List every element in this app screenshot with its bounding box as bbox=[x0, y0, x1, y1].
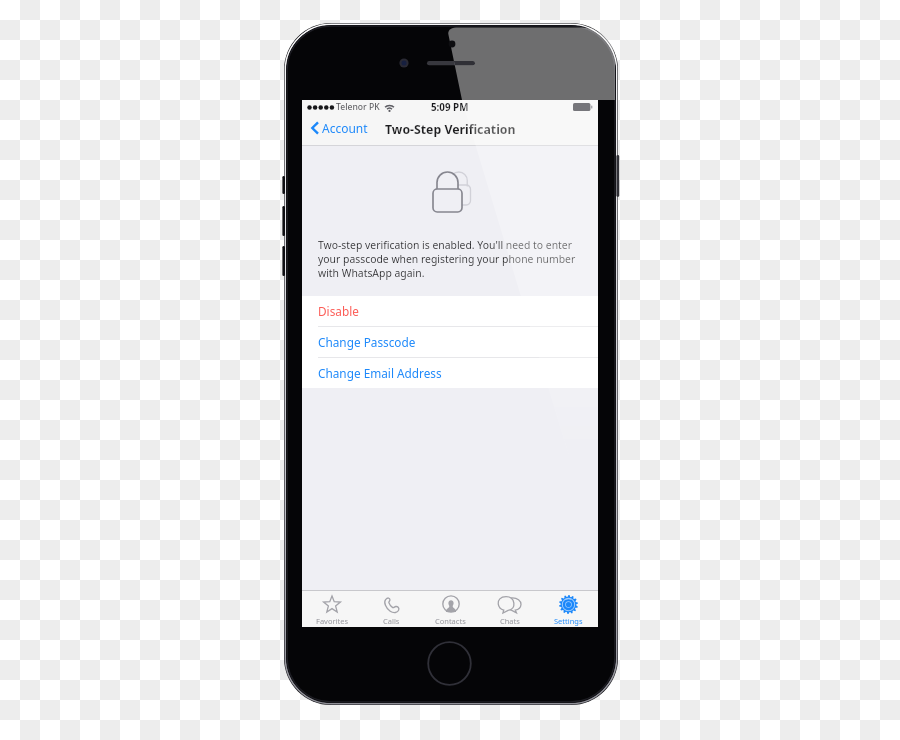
staticText: Disable bbox=[318, 303, 359, 319]
staticText: Calls bbox=[383, 616, 400, 626]
button[interactable]: Calls bbox=[362, 591, 421, 627]
staticText: Two-Step Verification bbox=[385, 121, 516, 138]
staticText: 5:09 PM bbox=[431, 101, 469, 114]
staticText: Change Passcode bbox=[318, 334, 416, 350]
staticText: Change Email Address bbox=[318, 365, 442, 381]
button[interactable]: Change Passcode bbox=[302, 327, 598, 358]
button[interactable]: Chats bbox=[480, 591, 539, 627]
staticText: Favorites bbox=[316, 616, 349, 626]
staticText: Telenor PK bbox=[336, 101, 380, 113]
staticText: Settings bbox=[554, 616, 583, 626]
button[interactable]: Contacts bbox=[421, 591, 480, 627]
staticText: Account bbox=[322, 120, 368, 136]
button[interactable]: Account bbox=[302, 114, 374, 142]
staticText: Contacts bbox=[435, 616, 466, 626]
staticText: Two-step verification is enabled. You'll… bbox=[318, 238, 582, 280]
button[interactable]: Change Email Address bbox=[302, 358, 598, 388]
button[interactable]: Favorites bbox=[302, 591, 362, 627]
button[interactable]: Disable bbox=[302, 296, 598, 327]
button[interactable]: Settings bbox=[539, 591, 598, 627]
staticText: Chats bbox=[500, 616, 520, 626]
